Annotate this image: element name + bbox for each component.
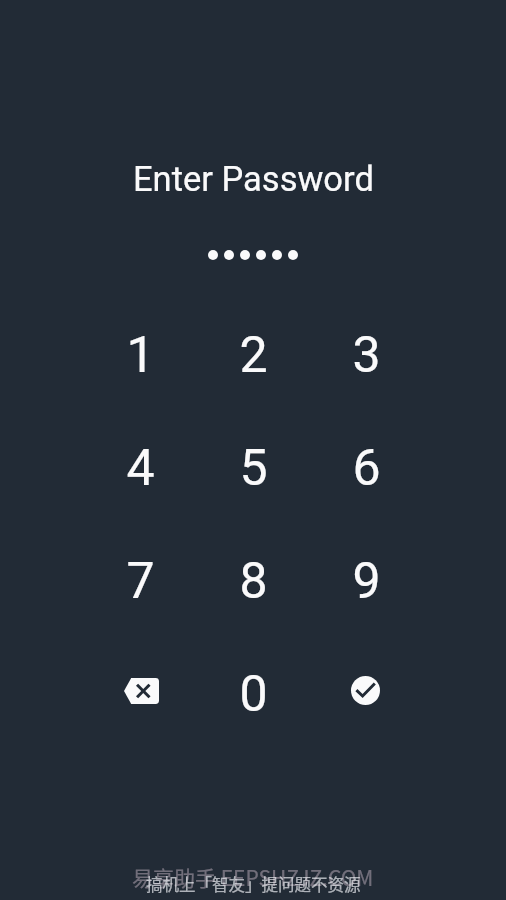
button[interactable]: 6 (310, 412, 423, 525)
button[interactable]: 4 (84, 412, 197, 525)
staticText: 2 (239, 326, 268, 385)
staticText: 1 (126, 326, 155, 385)
button[interactable]: 2 (197, 299, 310, 412)
staticText: 易享助手 EEPSHZJZ.COM (132, 862, 374, 892)
button[interactable]: 9 (310, 525, 423, 638)
staticText: 3 (352, 326, 381, 385)
staticText: 8 (239, 552, 268, 611)
button[interactable]: 5 (197, 412, 310, 525)
button[interactable]: 8 (197, 525, 310, 638)
button[interactable]: Backspace (84, 638, 197, 751)
staticText: 5 (239, 439, 268, 498)
staticText: 4 (126, 439, 155, 498)
button[interactable]: 7 (84, 525, 197, 638)
staticText: 6 (352, 439, 381, 498)
staticText: 搞机上「智友」提问题不资源 (146, 872, 361, 896)
staticText: 0 (239, 665, 268, 724)
staticText: 7 (126, 552, 155, 611)
button[interactable]: 0 (197, 638, 310, 751)
button[interactable]: 3 (310, 299, 423, 412)
staticText: 9 (352, 552, 381, 611)
button[interactable]: 1 (84, 299, 197, 412)
button[interactable]: Confirm (310, 638, 423, 751)
staticText: Enter Password (133, 159, 374, 199)
